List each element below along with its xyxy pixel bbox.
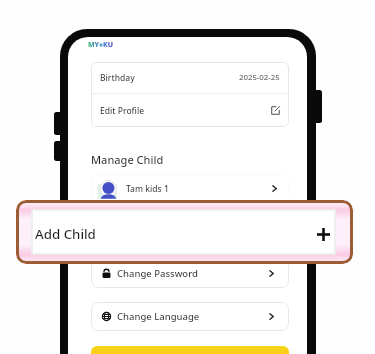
button[interactable]: Change password [91, 259, 289, 288]
staticText: Add Child [35, 225, 96, 243]
other: Change password [102, 269, 111, 278]
staticText: Birthday [100, 72, 135, 84]
button[interactable] [16, 200, 353, 264]
button[interactable] [91, 346, 289, 354]
staticText: 2025-02-25 [239, 72, 280, 83]
button[interactable]: Birthday [91, 62, 289, 93]
staticText: Change Language [117, 310, 200, 323]
staticText: MY [88, 40, 99, 50]
button[interactable]: Tam kids 1 [91, 174, 289, 203]
staticText: Change Password [117, 267, 198, 280]
staticText: Tam kids 1 [126, 183, 169, 195]
other: Add child [317, 228, 330, 241]
staticText: KU [103, 40, 113, 50]
other: Change language [102, 312, 111, 321]
button[interactable]: Edit Profile [91, 94, 289, 127]
button[interactable]: Change language [91, 302, 289, 331]
staticText: Edit Profile [100, 105, 145, 117]
other: Edit profile [271, 106, 280, 115]
staticText: Manage Child [91, 152, 164, 167]
